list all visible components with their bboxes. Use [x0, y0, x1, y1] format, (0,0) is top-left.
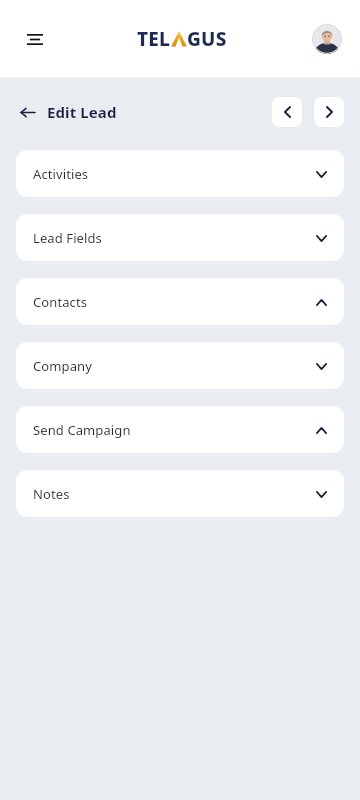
staticText: Send Campaign [33, 421, 131, 439]
staticText: TEL [137, 26, 171, 52]
button[interactable]: Previous [272, 97, 302, 127]
staticText: Lead Fields [33, 229, 102, 247]
staticText: Notes [33, 485, 70, 503]
staticText: Contacts [33, 293, 88, 311]
button[interactable]: Contacts [16, 278, 344, 325]
button[interactable]: Send Campaign [16, 406, 344, 453]
button[interactable]: Notes [16, 470, 344, 517]
staticText: GUS [187, 26, 227, 52]
button[interactable]: Next [314, 97, 344, 127]
button[interactable]: Open menu [18, 22, 52, 56]
staticText: Edit Lead [47, 102, 117, 122]
button[interactable]: Edit Lead [20, 102, 123, 122]
button[interactable]: Expand Lead Fields [310, 227, 332, 249]
button[interactable]: Collapse Contacts [310, 291, 332, 313]
button[interactable]: Expand Activities [310, 163, 332, 185]
staticText: Activities [33, 165, 89, 183]
button[interactable]: Company [16, 342, 344, 389]
button[interactable]: Expand Notes [310, 483, 332, 505]
button[interactable]: Collapse Send Campaign [310, 419, 332, 441]
button[interactable]: Expand Company [310, 355, 332, 377]
staticText: Company [33, 357, 92, 375]
button[interactable]: Profile [312, 24, 342, 54]
button[interactable]: Activities [16, 150, 344, 197]
button[interactable]: Lead Fields [16, 214, 344, 261]
